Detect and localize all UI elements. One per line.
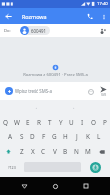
staticText: B bbox=[63, 147, 68, 156]
button[interactable]: B bbox=[60, 144, 71, 159]
staticText: H bbox=[63, 132, 68, 141]
button[interactable]: I bbox=[77, 115, 88, 129]
staticText: 17:40 bbox=[97, 1, 108, 7]
staticText: P bbox=[103, 118, 107, 127]
staticText: U bbox=[69, 118, 74, 127]
button[interactable]: D bbox=[27, 129, 38, 144]
button[interactable]: X bbox=[27, 144, 38, 159]
button[interactable]: 600491 bbox=[20, 26, 50, 35]
button[interactable]: Add attachment bbox=[5, 87, 13, 95]
staticText: F bbox=[42, 132, 46, 141]
button[interactable]: N bbox=[71, 144, 82, 159]
button[interactable]: L bbox=[93, 129, 104, 144]
staticText: Do: bbox=[4, 28, 11, 34]
staticText: Q bbox=[3, 118, 8, 127]
staticText: Rozmowa bbox=[22, 13, 47, 20]
button[interactable]: More options bbox=[97, 10, 110, 23]
staticText: Rozmowa z 600491 · Przez SMS-a bbox=[23, 72, 88, 78]
button[interactable]: Enter bbox=[81, 159, 110, 175]
button[interactable]: R bbox=[33, 115, 44, 129]
staticText: A bbox=[8, 132, 13, 141]
staticText: 600491 bbox=[31, 28, 47, 34]
button[interactable]: S bbox=[16, 129, 27, 144]
staticText: O bbox=[91, 118, 96, 127]
staticText: M bbox=[85, 147, 91, 156]
staticText: G bbox=[52, 132, 57, 141]
button[interactable]: Home bbox=[48, 179, 62, 193]
button[interactable]: Y bbox=[55, 115, 66, 129]
button[interactable]: J bbox=[71, 129, 82, 144]
staticText: N bbox=[74, 147, 79, 156]
button[interactable]: Call bbox=[83, 9, 97, 23]
staticText: Wpisz treść SMS-a bbox=[15, 88, 53, 94]
button[interactable]: Back bbox=[0, 8, 16, 24]
button[interactable]: E bbox=[22, 115, 33, 129]
staticText: E bbox=[26, 118, 30, 127]
button[interactable]: Back bbox=[17, 179, 31, 193]
staticText: J bbox=[76, 132, 78, 141]
button[interactable]: C bbox=[38, 144, 49, 159]
staticText: Z bbox=[20, 147, 24, 156]
button[interactable]: K bbox=[82, 129, 93, 144]
staticText: S bbox=[20, 132, 24, 141]
staticText: V bbox=[53, 147, 57, 156]
button[interactable]: Z bbox=[16, 144, 27, 159]
staticText: W bbox=[14, 118, 20, 127]
staticText: ?123 bbox=[8, 165, 16, 170]
button[interactable]: Send SMS bbox=[97, 85, 110, 98]
button[interactable]: U bbox=[66, 115, 77, 129]
button[interactable]: Add contact bbox=[96, 24, 110, 37]
button[interactable]: O bbox=[88, 115, 99, 129]
staticText: SMS bbox=[101, 93, 107, 97]
staticText: Y bbox=[59, 118, 63, 127]
button[interactable]: T bbox=[44, 115, 55, 129]
staticText: T bbox=[48, 118, 52, 127]
button[interactable]: H bbox=[60, 129, 71, 144]
button[interactable]: F bbox=[38, 129, 49, 144]
button[interactable]: W bbox=[11, 115, 22, 129]
staticText: L bbox=[97, 132, 101, 141]
button[interactable]: ?123 bbox=[0, 159, 24, 175]
button[interactable]: Recent apps bbox=[79, 179, 93, 193]
staticText: D bbox=[30, 132, 35, 141]
button[interactable]: P bbox=[99, 115, 110, 129]
button[interactable]: M bbox=[82, 144, 93, 159]
staticText: I bbox=[81, 118, 84, 127]
button[interactable]: Backspace bbox=[93, 144, 110, 159]
staticText: X bbox=[31, 147, 35, 156]
staticText: K bbox=[86, 132, 90, 141]
staticText: R bbox=[37, 118, 41, 127]
button[interactable]: G bbox=[49, 129, 60, 144]
button[interactable]: Q bbox=[0, 115, 11, 129]
button[interactable]: Emoji bbox=[84, 85, 97, 98]
button[interactable]: A bbox=[5, 129, 16, 144]
staticText: C bbox=[41, 147, 46, 156]
button[interactable]: V bbox=[49, 144, 60, 159]
button[interactable]: Shift bbox=[0, 144, 16, 159]
